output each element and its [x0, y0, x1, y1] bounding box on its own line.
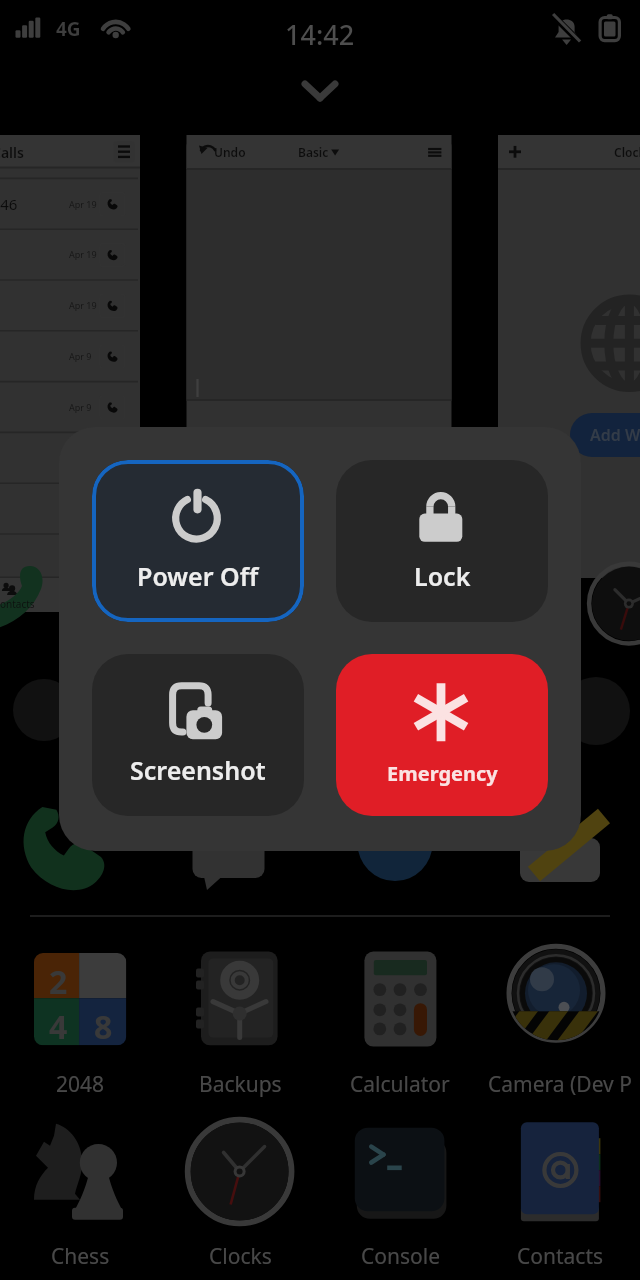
- staticText: Undo: [214, 144, 246, 160]
- staticText: 7546: [0, 194, 18, 214]
- staticText: Apr 19: [69, 248, 97, 260]
- staticText: Apr 9: [69, 401, 92, 413]
- staticText: Console: [361, 1242, 440, 1271]
- staticText: Add World Clock: [590, 424, 640, 446]
- staticText: Clock: [614, 144, 640, 160]
- staticText: Apr 19: [69, 198, 97, 210]
- staticText: Apr 9: [69, 350, 92, 362]
- staticText: Clocks: [209, 1242, 272, 1271]
- staticText: 4G: [56, 16, 81, 42]
- button[interactable]: Lock: [336, 460, 548, 622]
- button[interactable]: Emergency: [336, 654, 548, 816]
- staticText: Contacts: [517, 1242, 604, 1271]
- staticText: Lock: [414, 559, 471, 593]
- staticText: Emergency: [387, 760, 498, 787]
- staticText: 2: [49, 960, 68, 1004]
- staticText: 8: [94, 1005, 113, 1049]
- staticText: Backups: [199, 1070, 282, 1099]
- staticText: ontacts: [0, 597, 35, 611]
- staticText: 4: [49, 1005, 68, 1049]
- staticText: 14:42: [285, 16, 355, 53]
- staticText: 2048: [56, 1070, 105, 1099]
- staticText: Power Off: [137, 559, 259, 593]
- staticText: Basic: [298, 144, 329, 160]
- staticText: Apr 19: [69, 299, 97, 311]
- button[interactable]: Screenshot: [92, 654, 304, 816]
- staticText: Screenshot: [130, 753, 266, 787]
- button[interactable]: Power Off: [92, 460, 304, 622]
- button[interactable]: Expand quick settings: [290, 72, 350, 112]
- staticText: Chess: [51, 1242, 110, 1271]
- staticText: Camera (Dev P: [488, 1070, 632, 1099]
- staticText: Calls: [0, 143, 24, 162]
- staticText: Calculator: [350, 1070, 450, 1099]
